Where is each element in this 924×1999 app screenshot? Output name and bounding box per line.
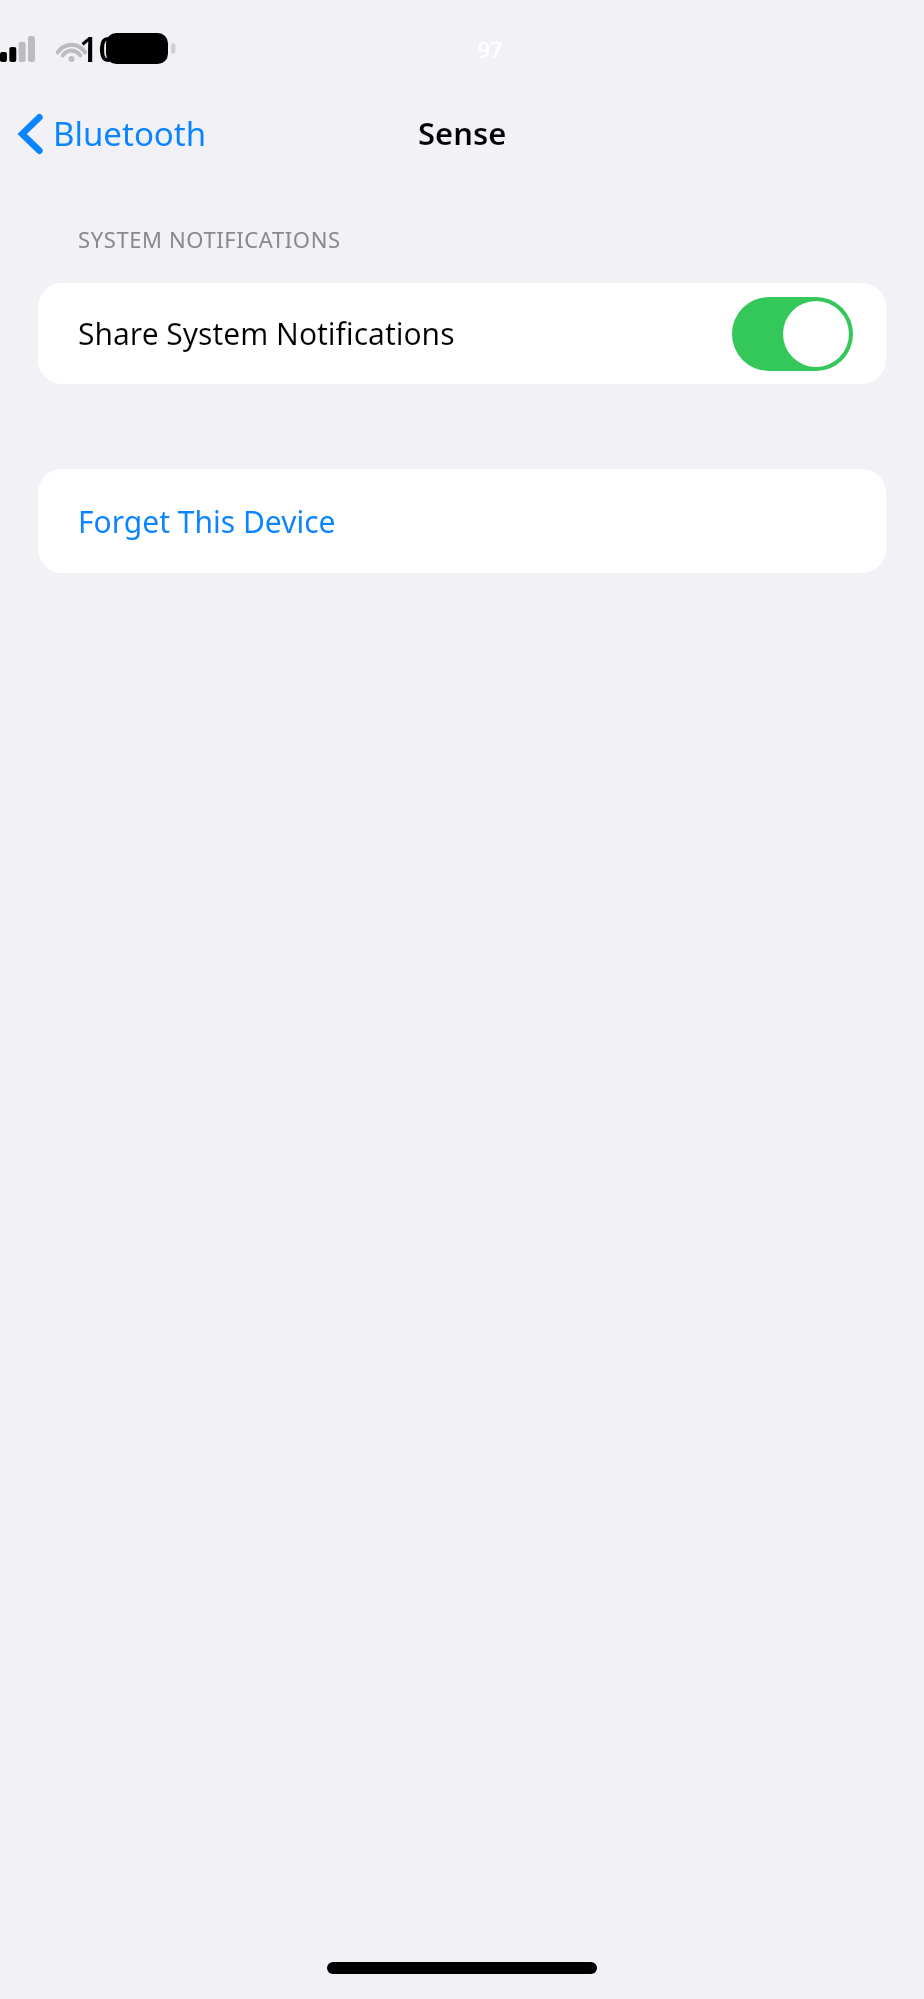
button[interactable]: Forget This Device xyxy=(38,469,886,573)
staticText: 97 xyxy=(106,34,874,64)
button[interactable]: Bluetooth xyxy=(0,103,221,164)
staticText: 10:23 xyxy=(79,26,167,72)
staticText: Bluetooth xyxy=(53,111,207,156)
button[interactable]: Share System Notifications xyxy=(38,283,886,384)
staticText: Forget This Device xyxy=(78,501,336,542)
button[interactable]: Share System Notifications toggle, on xyxy=(732,297,853,371)
staticText: Sense xyxy=(418,112,507,154)
staticText: SYSTEM NOTIFICATIONS xyxy=(78,224,341,254)
staticText: Share System Notifications xyxy=(78,313,455,354)
